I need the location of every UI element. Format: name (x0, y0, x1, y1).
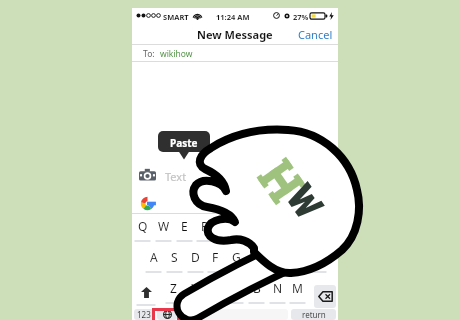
button[interactable]: B (247, 278, 266, 304)
staticText: Z (170, 280, 177, 296)
staticText: D (191, 249, 200, 265)
staticText: To: (143, 48, 155, 60)
staticText: E (181, 218, 188, 234)
staticText: V (232, 280, 240, 296)
staticText: F (212, 249, 219, 265)
staticText: Paste (170, 136, 198, 150)
button[interactable]: R (195, 216, 214, 242)
button[interactable]: Emoji keyboard (157, 309, 177, 320)
button[interactable]: Backspace (314, 285, 336, 308)
button[interactable]: K (289, 247, 308, 273)
button[interactable]: M (288, 278, 307, 304)
staticText: X (191, 280, 199, 296)
button[interactable]: X (185, 278, 204, 304)
button[interactable] (180, 309, 288, 320)
button[interactable]: G (227, 247, 246, 273)
staticText: H (252, 249, 261, 265)
staticText: 11:24 AM (216, 12, 250, 22)
staticText: Cancel (298, 27, 333, 42)
staticText: return (302, 309, 326, 320)
staticText: 27% (293, 12, 309, 22)
button[interactable]: D (186, 247, 205, 273)
button[interactable]: S (165, 247, 184, 273)
button[interactable]: L (309, 247, 328, 273)
button[interactable]: Y (237, 216, 256, 242)
staticText: Text (165, 169, 187, 184)
button[interactable]: Z (164, 278, 183, 304)
staticText: N (273, 280, 283, 296)
button[interactable]: return (291, 309, 336, 320)
button[interactable]: Shift (135, 282, 157, 306)
button[interactable]: E (175, 216, 194, 242)
staticText: T (222, 218, 229, 234)
button[interactable]: Take photo (139, 168, 156, 182)
staticText: 123 (137, 309, 151, 320)
staticText: Q (138, 218, 148, 234)
staticText: R (201, 218, 209, 234)
button[interactable]: Google (138, 194, 157, 213)
button[interactable]: H (247, 247, 266, 273)
button[interactable]: T (216, 216, 235, 242)
staticText: W (158, 218, 170, 234)
staticText: SMART (163, 12, 189, 22)
staticText: M (292, 280, 303, 296)
staticText: A (150, 249, 158, 265)
staticText: wikihow (160, 48, 193, 60)
staticText: G (232, 249, 241, 265)
button[interactable]: A (144, 247, 163, 273)
button[interactable]: 123 (134, 309, 154, 320)
staticText: S (171, 249, 178, 265)
staticText: C (212, 280, 220, 296)
button[interactable]: Q (133, 216, 152, 242)
staticText: New Message (197, 27, 273, 42)
button[interactable]: Cancel (293, 24, 338, 45)
button[interactable]: W (154, 216, 173, 242)
staticText: B (253, 280, 261, 296)
button[interactable]: J (268, 247, 287, 273)
button[interactable]: N (268, 278, 287, 304)
button[interactable]: C (206, 278, 225, 304)
staticText: L (315, 249, 322, 265)
button[interactable]: V (226, 278, 245, 304)
button[interactable]: F (206, 247, 225, 273)
